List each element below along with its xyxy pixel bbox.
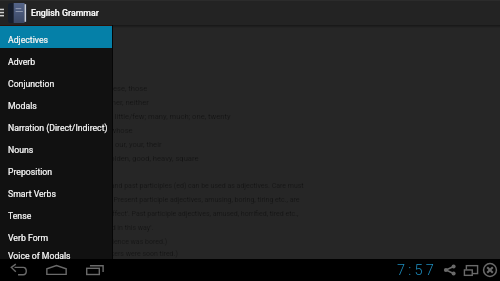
staticText: Nouns: [8, 145, 34, 155]
staticText: Distributive: each, every, either, neith…: [21, 98, 149, 107]
button[interactable]: Preposition: [0, 161, 113, 183]
staticText: Adverb: [8, 57, 36, 67]
staticText: Smart Verbs: [8, 189, 56, 199]
button[interactable]: Share: [440, 259, 459, 281]
button[interactable]: Adjectives: [0, 29, 113, 51]
button[interactable]: Verb Form: [0, 227, 113, 249]
button[interactable]: Voice of Modals: [0, 249, 113, 263]
staticText: active and mean 'having this effect'. Pa…: [19, 210, 299, 218]
button[interactable]: Back: [4, 259, 34, 281]
button[interactable]: Conjunction: [0, 73, 113, 95]
button[interactable]: Open navigation drawer: [0, 0, 8, 25]
staticText: Verb Form: [8, 233, 49, 243]
button[interactable]: Narration (Direct/Indirect): [0, 117, 113, 139]
staticText: The work was tiring. (The workers were s…: [19, 250, 178, 258]
button[interactable]: Recent apps: [80, 259, 110, 281]
staticText: Preposition: [8, 167, 53, 177]
button[interactable]: Adverb: [0, 51, 113, 73]
staticText: Modals: [8, 101, 37, 111]
button[interactable]: Tense: [0, 205, 113, 227]
staticText: Interrogative: which, what, whose: [21, 126, 133, 135]
staticText: Of quality: clever, dry, fat, golden, go…: [21, 154, 199, 163]
button[interactable]: Modals: [0, 95, 113, 117]
staticText: are passive and mean 'affected in this w…: [19, 224, 154, 232]
button[interactable]: Smart Verbs: [0, 183, 113, 205]
staticText: English Grammar: [31, 8, 99, 18]
staticText: Possessive: my, his, her, its, our, your…: [21, 140, 162, 149]
staticText: Tense: [8, 211, 32, 221]
staticText: Demonstrative: this, that, these, those: [21, 84, 148, 93]
staticText: Quantitative: some, any, no; little/few;…: [21, 112, 231, 121]
button[interactable]: Close: [480, 259, 499, 281]
staticText: Conjunction: [8, 79, 55, 89]
staticText: Both present participles (ing) and past …: [19, 182, 304, 190]
staticText: The play was boring. (The audience was b…: [19, 238, 168, 246]
staticText: 7:57: [397, 262, 437, 279]
staticText: Narration (Direct/Indirect): [8, 123, 108, 133]
staticText: be taken not to confuse them. Present pa…: [19, 196, 300, 204]
staticText: Participles: [21, 168, 57, 177]
staticText: Voice of Modals: [8, 251, 71, 261]
button[interactable]: Nouns: [0, 139, 113, 161]
staticText: Adjectives: [8, 35, 48, 45]
button[interactable]: Screenshot: [461, 259, 480, 281]
button[interactable]: Home: [41, 259, 72, 281]
